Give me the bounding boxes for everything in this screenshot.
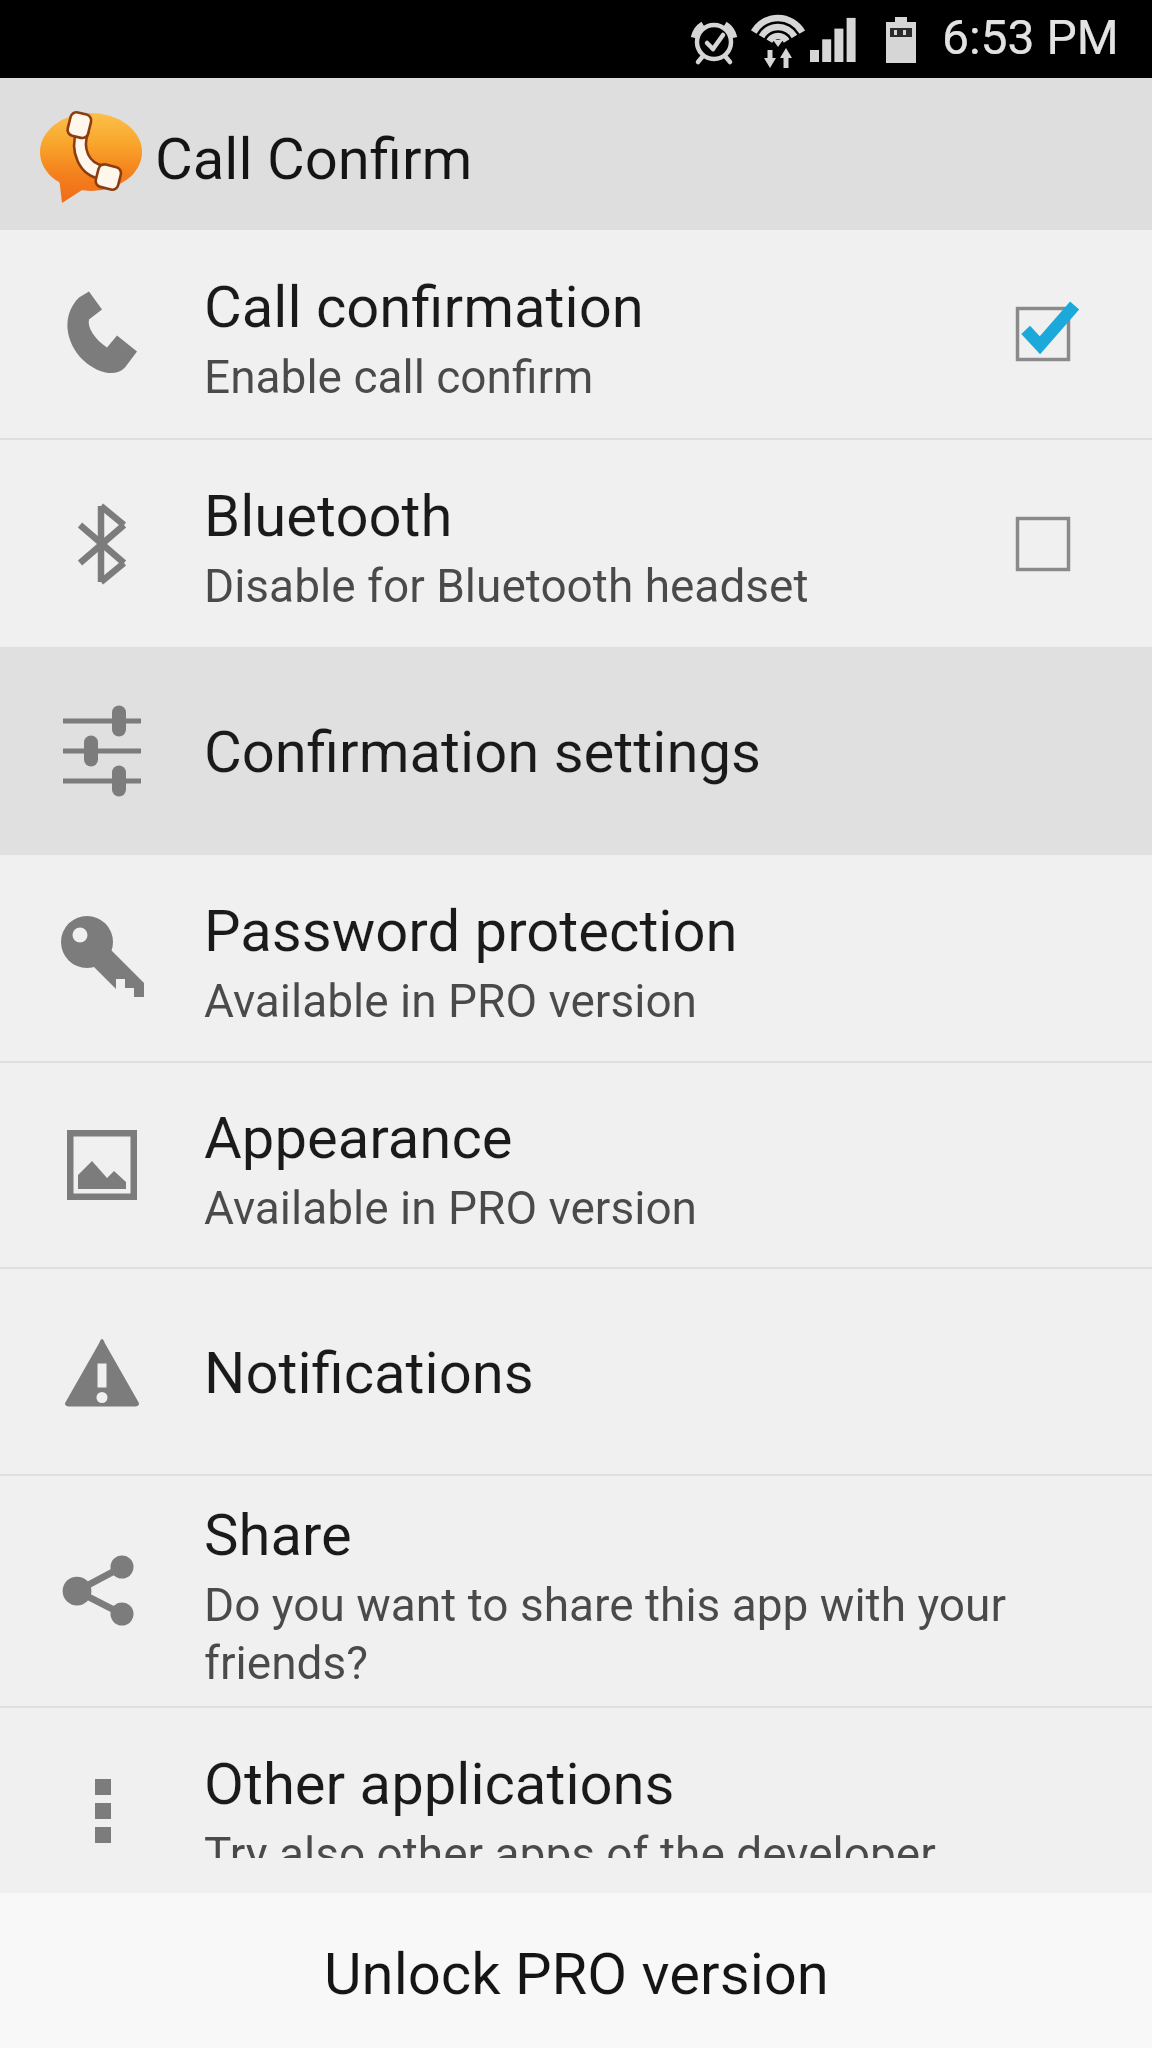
- button[interactable]: Appearance: [0, 1063, 1152, 1267]
- staticText: Available in PRO version: [204, 974, 698, 1028]
- button[interactable]: Call confirmation: [0, 230, 1152, 438]
- button[interactable]: Bluetooth: [0, 440, 1152, 647]
- staticText: Available in PRO version: [204, 1181, 698, 1235]
- button[interactable]: Other applications: [0, 1708, 1152, 1858]
- staticText: Password protection: [204, 897, 738, 965]
- staticText: Do you want to share this app with your …: [204, 1578, 1106, 1690]
- staticText: 6:53 PM: [942, 9, 1119, 65]
- staticText: Disable for Bluetooth headset: [204, 559, 809, 613]
- staticText: Other applications: [204, 1750, 675, 1818]
- staticText: Bluetooth: [204, 482, 453, 550]
- staticText: Share: [204, 1501, 352, 1569]
- button[interactable]: Confirmation settings: [0, 649, 1152, 853]
- staticText: Call confirmation: [204, 273, 644, 341]
- staticText: Appearance: [204, 1104, 513, 1172]
- button[interactable]: Password protection: [0, 855, 1152, 1061]
- staticText: Try also other apps of the developer: [204, 1827, 936, 1858]
- staticText: Unlock PRO version: [324, 1940, 829, 2008]
- button[interactable]: Share: [0, 1476, 1152, 1706]
- button[interactable]: Disable ${item.title}: [934, 230, 1152, 438]
- button[interactable]: Unlock PRO version: [0, 1893, 1152, 2048]
- other: Call Confirm app icon: [38, 111, 150, 215]
- staticText: Enable call confirm: [204, 350, 594, 404]
- staticText: Confirmation settings: [204, 718, 761, 786]
- staticText: Notifications: [204, 1339, 534, 1407]
- button[interactable]: Notifications: [0, 1269, 1152, 1474]
- button[interactable]: Enable ${item.title}: [934, 440, 1152, 647]
- staticText: Call Confirm: [155, 125, 473, 193]
